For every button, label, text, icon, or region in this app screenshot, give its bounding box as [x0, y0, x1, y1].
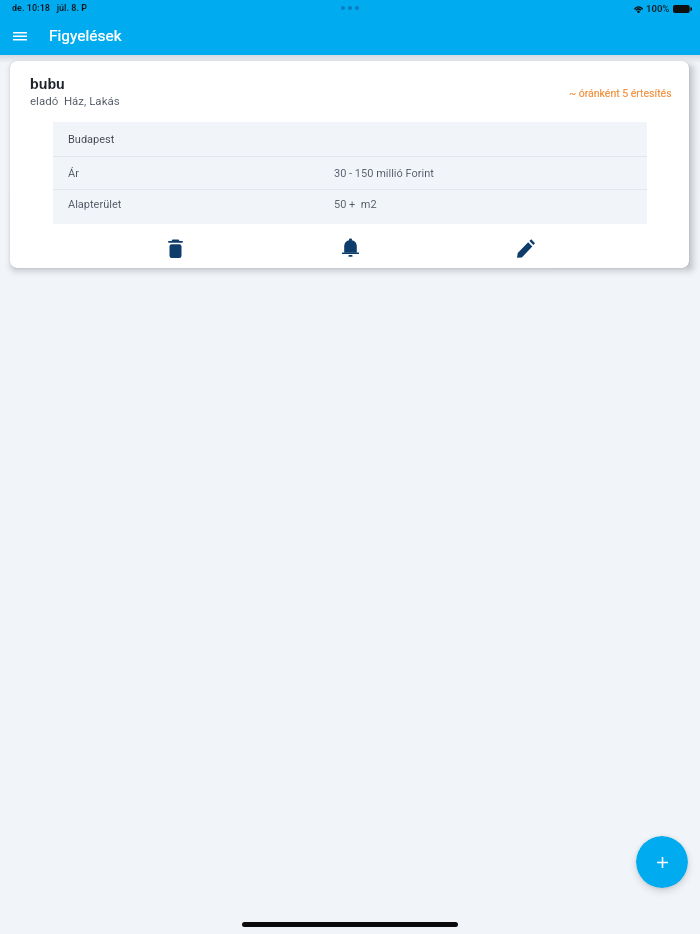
staticText: Alapterület	[68, 198, 122, 211]
staticText: Ár	[68, 167, 79, 180]
button[interactable]: Delete	[88, 226, 263, 268]
staticText: de. 10:18 júl. 8. P	[12, 3, 88, 14]
staticText: ~ óránként 5 értesítés	[569, 87, 672, 99]
staticText: 50 + m2	[334, 198, 377, 211]
staticText: Figyelések	[49, 27, 122, 45]
staticText: 30 - 150 millió Forint	[334, 167, 434, 180]
staticText: 100%	[646, 3, 670, 14]
staticText: eladó Ház, Lakás	[30, 94, 120, 107]
button[interactable]: Menu	[5, 22, 34, 51]
button[interactable]: Add	[636, 836, 688, 888]
button[interactable]: Edit	[438, 226, 613, 268]
staticText: Budapest	[68, 133, 115, 146]
button[interactable]: Notifications	[263, 226, 438, 268]
staticText: bubu	[30, 75, 65, 93]
